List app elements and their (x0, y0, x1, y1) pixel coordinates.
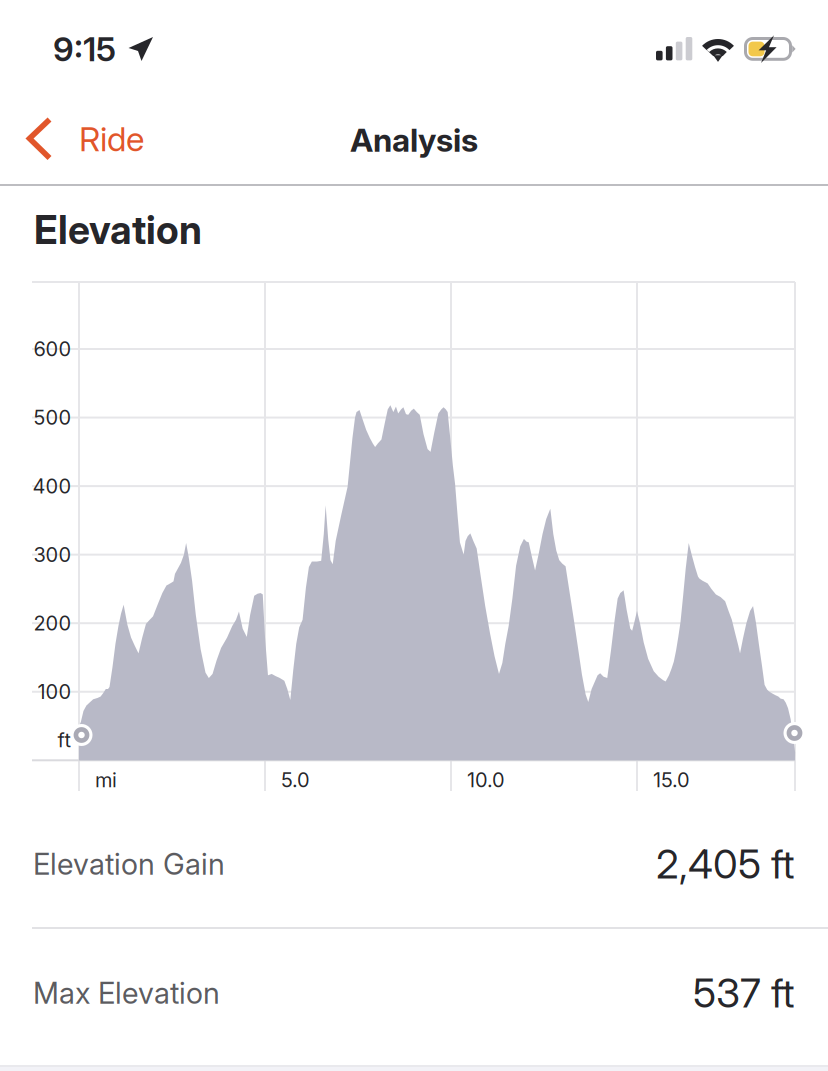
staticText: 537 ft (693, 969, 795, 1017)
staticText: Elevation (34, 207, 202, 253)
staticText: 2,405 ft (656, 840, 795, 888)
staticText: mi (95, 768, 117, 792)
staticText: 10.0 (467, 768, 505, 792)
staticText: 5.0 (281, 768, 310, 792)
staticText: 300 (33, 543, 71, 567)
staticText: 200 (33, 611, 71, 635)
staticText: 100 (37, 680, 71, 704)
staticText: ft (57, 728, 71, 752)
staticText: Analysis (350, 121, 478, 159)
button[interactable]: Max Elevation (0, 929, 828, 1057)
staticText: 400 (32, 474, 71, 498)
staticText: Max Elevation (33, 975, 220, 1011)
staticText: Ride (79, 119, 144, 159)
button[interactable]: Ride (0, 95, 240, 183)
staticText: 500 (33, 405, 71, 430)
staticText: Elevation Gain (33, 846, 225, 882)
staticText: 600 (33, 337, 71, 361)
staticText: 15.0 (653, 768, 690, 792)
button[interactable]: Elevation Gain (0, 800, 828, 928)
staticText: 9:15 (53, 29, 116, 69)
